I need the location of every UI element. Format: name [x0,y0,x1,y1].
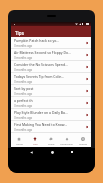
button[interactable]: Pumpkin Patch hack so yo... [11,37,91,49]
button[interactable]: Setting [75,134,91,147]
staticText: 3 months ago [14,56,33,60]
staticText: 3 months ago [14,104,33,108]
button[interactable]: Share [43,134,59,147]
staticText: Air Mattress Second so Floppy Do... [14,50,71,55]
button[interactable]: Sort by post [11,85,91,97]
staticText: First Making You Need to Know... [14,122,68,127]
button[interactable]: a perfect th [11,97,91,109]
staticText: Share [48,142,55,145]
staticText: Play Style Blunder on a Daily Ba... [14,110,68,115]
staticText: Home [16,142,23,145]
button[interactable]: Recents [70,150,74,154]
staticText: Consider the No Scissors Spend... [14,62,68,67]
staticText: 3 months ago [14,80,33,84]
staticText: Notification [60,142,74,145]
staticText: Sort by post [14,86,34,91]
button[interactable]: Tips [27,134,43,147]
button[interactable]: Notification [59,134,75,147]
staticText: 3 months ago [14,68,33,72]
staticText: 3 months ago [14,92,33,96]
staticText: Tips [15,30,24,36]
staticText: 3 months ago [14,116,33,120]
button[interactable]: Play Style Blunder on a Daily Ba... [11,109,91,121]
button[interactable]: Home [50,150,54,154]
staticText: Tips [33,142,38,145]
staticText: 3 months ago [14,128,33,132]
button[interactable]: Consider the No Scissors Spend... [11,61,91,73]
staticText: Todays Secrets Tip from Colin... [14,74,65,79]
button[interactable]: First Making You Need to Know... [11,121,91,133]
button[interactable]: Air Mattress Second so Floppy Do... [11,49,91,61]
staticText: 3 months ago [14,44,33,48]
staticText: Setting [79,142,87,145]
button[interactable]: Todays Secrets Tip from Colin... [11,73,91,85]
button[interactable]: Home [11,134,27,147]
staticText: a perfect th [14,98,33,103]
button[interactable]: Back [29,150,33,154]
staticText: Pumpkin Patch hack so yo... [14,38,60,43]
